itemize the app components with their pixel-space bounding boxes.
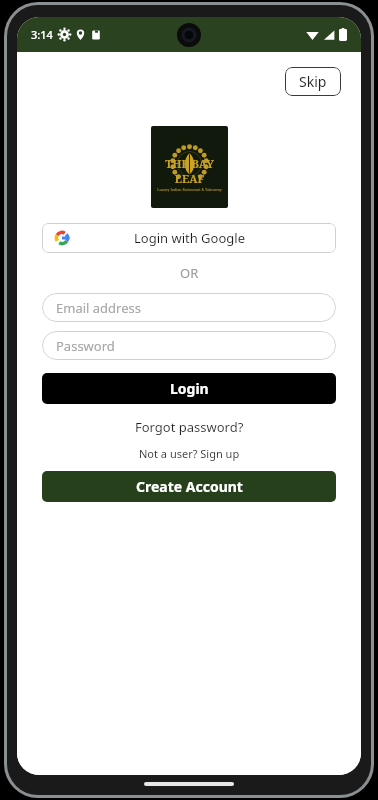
staticText: Luxury Indian Restaurant & Takeaway bbox=[157, 187, 222, 192]
button[interactable]: Login with Google bbox=[42, 223, 336, 253]
staticText: Forgot password? bbox=[135, 418, 244, 436]
staticText: Not a user? Sign up bbox=[139, 446, 240, 461]
button[interactable]: Login bbox=[42, 373, 336, 404]
button[interactable]: Email address bbox=[42, 293, 336, 322]
staticText: Password bbox=[56, 337, 115, 355]
staticText: 3:14 bbox=[31, 27, 53, 42]
button[interactable]: Forgot password? bbox=[129, 416, 250, 438]
staticText: THE BAY LEAF bbox=[151, 156, 228, 186]
staticText: Create Account bbox=[136, 477, 243, 496]
button[interactable]: Not a user? Sign up bbox=[133, 444, 246, 463]
staticText: Email address bbox=[56, 299, 141, 317]
staticText: OR bbox=[180, 264, 199, 282]
staticText: Login with Google bbox=[134, 229, 245, 247]
button[interactable]: Password bbox=[42, 331, 336, 360]
button[interactable]: Create Account bbox=[42, 471, 336, 502]
button[interactable]: Skip bbox=[285, 67, 341, 96]
staticText: Login bbox=[170, 379, 209, 398]
staticText: Skip bbox=[299, 72, 327, 91]
